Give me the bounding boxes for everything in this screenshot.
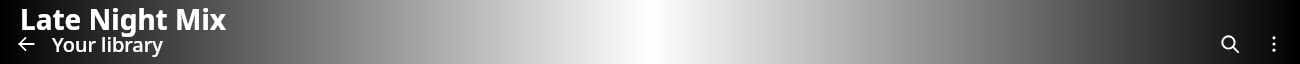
button[interactable]: Search: [1208, 24, 1252, 64]
staticText: Late Night Mix: [20, 0, 226, 38]
button[interactable]: Back: [4, 24, 48, 64]
button[interactable]: More options: [1252, 24, 1296, 64]
staticText: Your library: [52, 31, 163, 58]
staticText: 24 songs · 1 hr 48 min: [20, 42, 155, 44]
